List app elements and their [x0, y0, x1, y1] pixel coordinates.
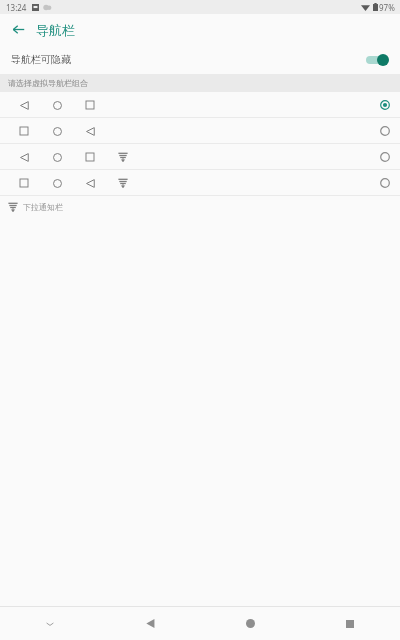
button[interactable]: Navigation bar hideable toggle	[364, 53, 390, 67]
button[interactable]: Recent apps	[300, 607, 400, 640]
staticText: 下拉通知栏	[23, 202, 63, 212]
staticText: 13:24	[6, 2, 27, 13]
button[interactable]: Home	[200, 607, 300, 640]
button[interactable]: Back	[0, 14, 36, 45]
button[interactable]	[0, 144, 400, 169]
button[interactable]	[0, 92, 400, 117]
button[interactable]: Hide navigation bar	[0, 607, 100, 640]
button[interactable]	[0, 170, 400, 195]
staticText: 请选择虚拟导航栏组合	[8, 78, 88, 88]
button[interactable]: Back	[100, 607, 200, 640]
staticText: 97%	[379, 2, 395, 13]
button[interactable]: 导航栏可隐藏	[0, 45, 400, 74]
button[interactable]	[0, 118, 400, 143]
staticText: 导航栏	[36, 22, 75, 38]
staticText: 导航栏可隐藏	[11, 53, 71, 66]
